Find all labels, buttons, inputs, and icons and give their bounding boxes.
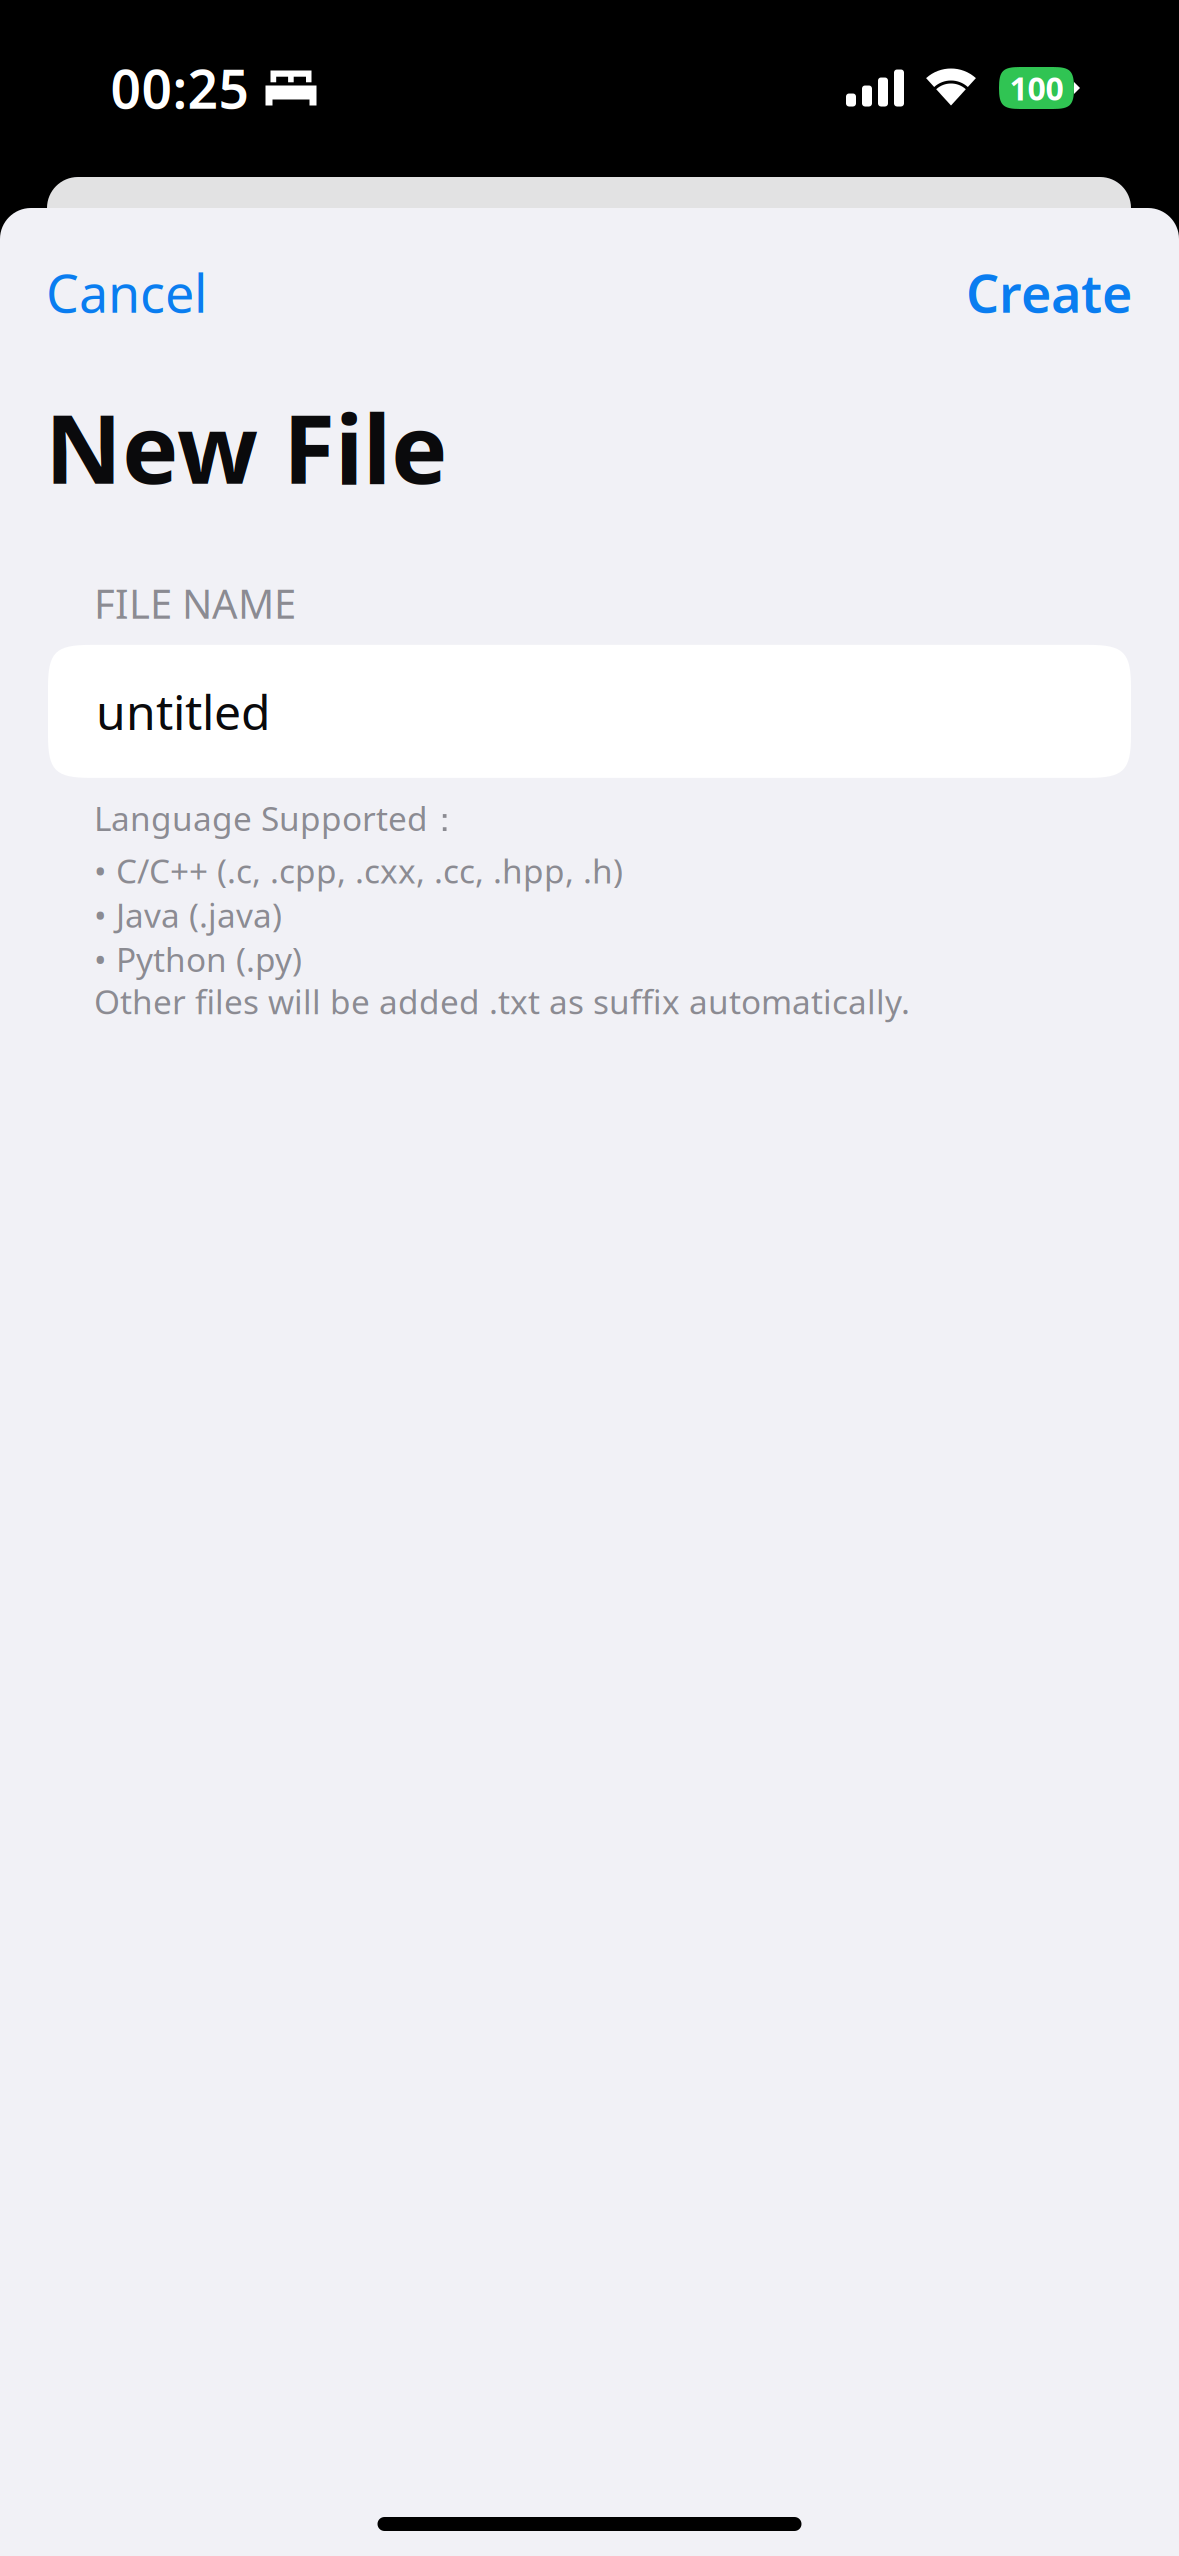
- staticText: untitled: [96, 679, 271, 743]
- button[interactable]: Cancel: [46, 250, 207, 335]
- staticText: 100: [1009, 67, 1063, 109]
- staticText: 00:25: [110, 53, 249, 123]
- staticText: Create: [966, 258, 1132, 327]
- staticText: Cancel: [46, 258, 207, 327]
- staticText: New File: [45, 384, 448, 510]
- staticText: Language Supported：: [94, 796, 461, 840]
- staticText: Other files will be added .txt as suffix…: [94, 979, 910, 1023]
- button[interactable]: untitled: [48, 645, 1131, 778]
- staticText: • Python (.py): [94, 937, 302, 981]
- staticText: • Java (.java): [94, 893, 282, 937]
- staticText: • C/C++ (.c, .cpp, .cxx, .cc, .hpp, .h): [94, 848, 623, 893]
- button[interactable]: Create: [966, 250, 1132, 335]
- staticText: FILE NAME: [94, 577, 296, 630]
